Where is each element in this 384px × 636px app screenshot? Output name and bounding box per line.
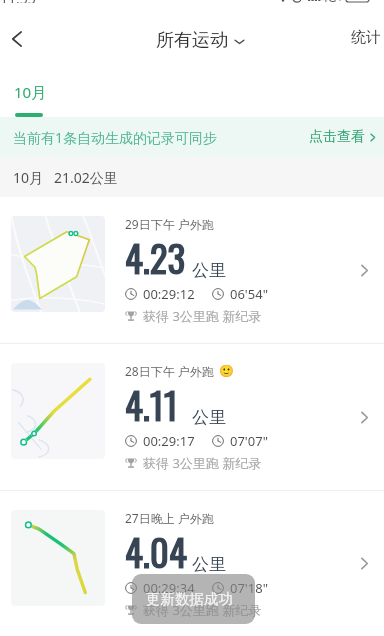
staticText: 07'07" bbox=[230, 432, 268, 450]
staticText: 获得 3公里跑 新纪录 bbox=[143, 601, 262, 619]
staticText: 获得 3公里跑 新纪录 bbox=[143, 307, 262, 325]
staticText: 公里 bbox=[192, 407, 226, 428]
button[interactable]: 所有运动 bbox=[156, 29, 245, 52]
staticText: 28日下午 户外跑 bbox=[125, 363, 214, 379]
staticText: 10月 bbox=[14, 82, 47, 102]
staticText: 4.11 bbox=[125, 377, 178, 432]
staticText: 所有运动 bbox=[156, 29, 228, 52]
button[interactable]: 当前有1条自动生成的记录可同步 bbox=[0, 117, 384, 157]
staticText: 点击查看 bbox=[309, 128, 365, 146]
staticText: 07'18" bbox=[230, 579, 268, 597]
staticText: 10月 21.02公里 bbox=[13, 168, 118, 187]
button[interactable]: 统计 bbox=[337, 18, 384, 57]
staticText: 公里 bbox=[192, 260, 226, 281]
staticText: 4G+ bbox=[321, 0, 344, 3]
staticText: 获得 3公里跑 新纪录 bbox=[143, 454, 262, 472]
staticText: 4.23 bbox=[125, 230, 186, 285]
staticText: 统计 bbox=[351, 28, 381, 47]
staticText: 11:55 bbox=[0, 0, 36, 3]
staticText: 当前有1条自动生成的记录可同步 bbox=[13, 128, 218, 147]
button[interactable]: 29日下午 户外跑 bbox=[0, 197, 384, 343]
staticText: 4.04 bbox=[125, 524, 187, 579]
button[interactable]: 27日晚上 户外跑 bbox=[0, 491, 384, 636]
staticText: 🙂 bbox=[219, 364, 234, 378]
button[interactable]: 10月 bbox=[8, 78, 53, 106]
staticText: 公里 bbox=[192, 554, 226, 575]
staticText: 29日下午 户外跑 bbox=[125, 216, 214, 232]
button[interactable]: Back bbox=[0, 19, 37, 59]
staticText: 更新数据成功 bbox=[146, 590, 233, 608]
staticText: 00:29:12 bbox=[143, 285, 195, 303]
staticText: 06'54" bbox=[230, 285, 268, 303]
staticText: 27日晚上 户外跑 bbox=[125, 510, 214, 526]
button[interactable]: 28日下午 户外跑 bbox=[0, 344, 384, 490]
staticText: 00:29:17 bbox=[143, 432, 195, 450]
staticText: 00:29:34 bbox=[143, 579, 195, 597]
